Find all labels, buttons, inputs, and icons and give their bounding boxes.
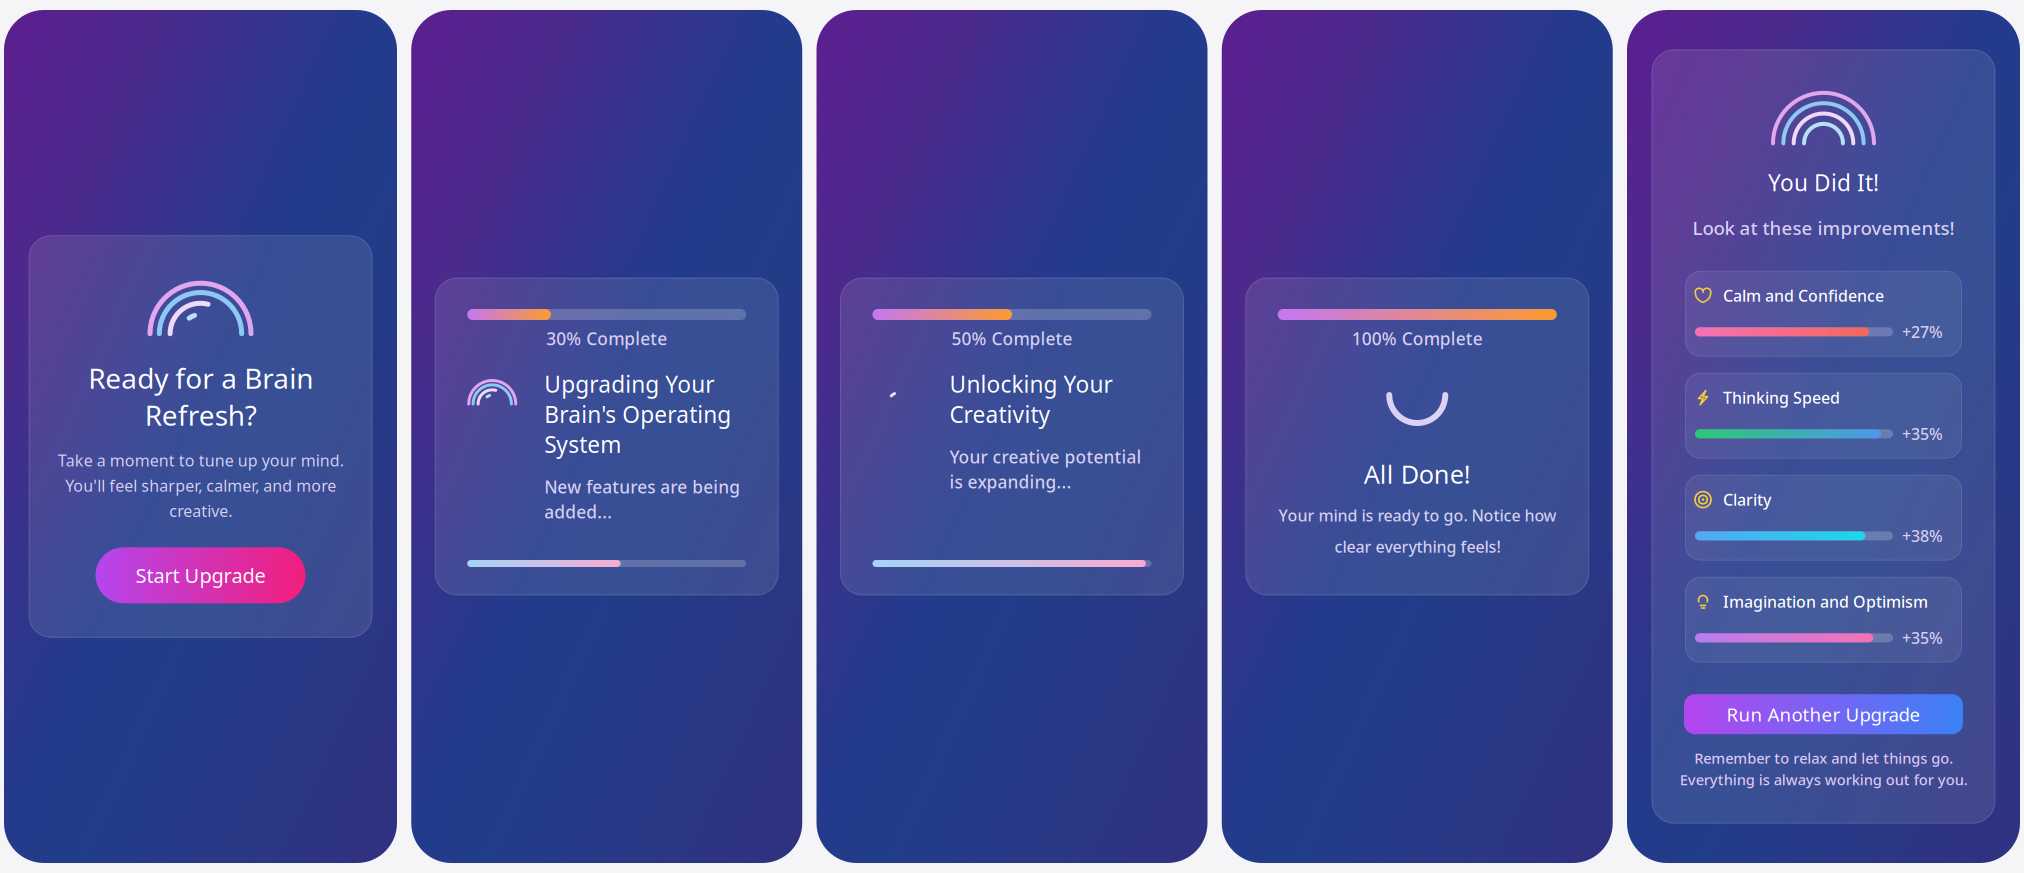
- staticText: Take a moment to tune up your mind. You'…: [57, 450, 343, 521]
- button[interactable]: Thinking Speed: [1685, 373, 1961, 458]
- button[interactable]: Imagination and Optimism: [1685, 577, 1961, 662]
- staticText: +35%: [1902, 627, 1943, 648]
- staticText: 100% Complete: [1352, 327, 1483, 350]
- staticText: Upgrading Your Brain's Operating System: [544, 369, 731, 459]
- staticText: Your mind is ready to go. Notice how cle…: [1278, 505, 1556, 557]
- staticText: +27%: [1902, 321, 1943, 342]
- staticText: 30% Complete: [546, 327, 667, 350]
- staticText: Thinking Speed: [1723, 387, 1840, 408]
- staticText: Calm and Confidence: [1723, 285, 1884, 306]
- staticText: You Did It!: [1768, 167, 1879, 197]
- staticText: +38%: [1902, 525, 1943, 546]
- button[interactable]: Clarity: [1685, 475, 1961, 560]
- staticText: Run Another Upgrade: [1726, 702, 1920, 727]
- staticText: Imagination and Optimism: [1723, 591, 1928, 612]
- staticText: Ready for a Brain Refresh?: [88, 359, 313, 434]
- staticText: All Done!: [1364, 457, 1471, 491]
- button[interactable]: Run Another Upgrade: [1684, 694, 1963, 734]
- staticText: Start Upgrade: [135, 562, 265, 589]
- staticText: Remember to relax and let things go. Eve…: [1679, 748, 1967, 789]
- staticText: New features are being added...: [544, 475, 740, 523]
- staticText: Look at these improvements!: [1692, 215, 1954, 240]
- button[interactable]: Start Upgrade: [95, 547, 305, 603]
- staticText: +35%: [1902, 423, 1943, 444]
- staticText: Your creative potential is expanding...: [949, 445, 1141, 493]
- button[interactable]: Calm and Confidence: [1685, 271, 1961, 356]
- staticText: Clarity: [1723, 489, 1771, 510]
- staticText: Unlocking Your Creativity: [949, 369, 1112, 429]
- staticText: 50% Complete: [951, 327, 1072, 350]
